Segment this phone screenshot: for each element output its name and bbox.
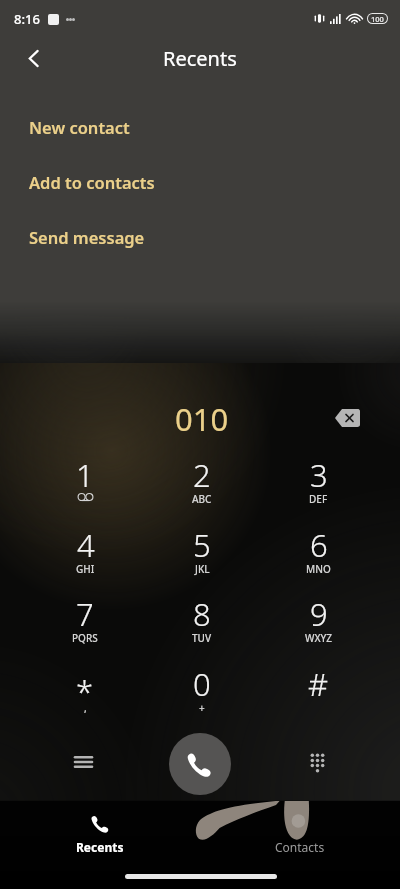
- staticText: 5: [193, 524, 211, 566]
- button[interactable]: Call: [169, 733, 231, 795]
- button[interactable]: New contact: [0, 99, 400, 154]
- staticText: 6: [310, 524, 328, 566]
- button[interactable]: Add to contacts: [0, 154, 400, 209]
- staticText: 3: [310, 454, 328, 496]
- button[interactable]: 9: [260, 593, 377, 649]
- button[interactable]: 7: [27, 593, 143, 649]
- staticText: 4: [77, 524, 95, 566]
- button[interactable]: 8: [143, 593, 260, 649]
- staticText: Contacts: [275, 839, 325, 855]
- staticText: 100: [371, 14, 384, 24]
- staticText: DEF: [309, 492, 328, 506]
- button[interactable]: 0: [143, 663, 260, 719]
- staticText: PQRS: [72, 631, 98, 645]
- staticText: MNO: [306, 562, 331, 576]
- staticText: GHI: [76, 562, 95, 576]
- button[interactable]: 2: [143, 454, 260, 510]
- staticText: New contact: [29, 116, 130, 138]
- staticText: 1: [76, 454, 94, 496]
- staticText: #: [308, 663, 329, 705]
- staticText: JKL: [195, 562, 210, 576]
- staticText: Recents: [76, 839, 124, 855]
- button[interactable]: 5: [143, 524, 260, 580]
- staticText: Recents: [163, 45, 237, 72]
- staticText: Add to contacts: [29, 171, 155, 193]
- button[interactable]: 6: [260, 524, 377, 580]
- button[interactable]: 3: [260, 454, 377, 510]
- staticText: +: [199, 701, 205, 715]
- staticText: 2: [193, 454, 211, 496]
- staticText: ABC: [192, 492, 212, 506]
- button[interactable]: Hide keypad: [293, 738, 341, 786]
- staticText: *: [76, 670, 94, 712]
- button[interactable]: 4: [27, 524, 143, 580]
- staticText: ,: [84, 701, 87, 715]
- staticText: 7: [76, 593, 94, 635]
- button[interactable]: #: [260, 663, 377, 719]
- staticText: TUV: [192, 631, 212, 645]
- button[interactable]: Send message: [0, 209, 400, 264]
- staticText: 9: [310, 593, 328, 635]
- button[interactable]: *: [27, 663, 143, 719]
- button[interactable]: Call history menu: [59, 738, 107, 786]
- button[interactable]: Backspace: [329, 400, 365, 436]
- staticText: WXYZ: [305, 631, 333, 645]
- button[interactable]: Back: [13, 38, 53, 78]
- button[interactable]: 1: [27, 454, 143, 510]
- button[interactable]: Recents: [0, 805, 200, 863]
- button[interactable]: Contacts: [200, 805, 400, 863]
- staticText: 8:16: [14, 10, 40, 28]
- staticText: 010: [175, 398, 229, 440]
- staticText: 0: [193, 663, 211, 705]
- staticText: 8: [193, 593, 211, 635]
- staticText: Send message: [29, 226, 145, 248]
